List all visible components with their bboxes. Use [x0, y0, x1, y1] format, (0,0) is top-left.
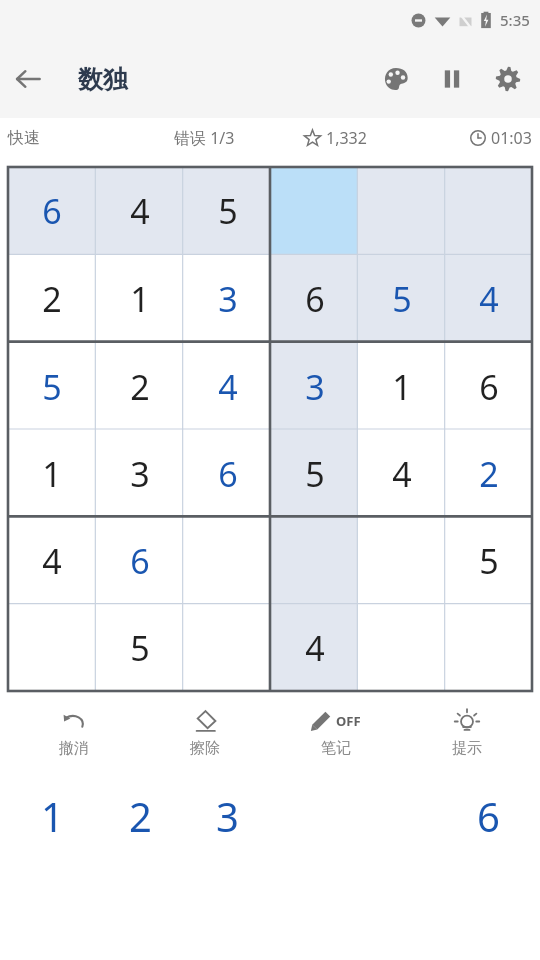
button[interactable]: 2: [96, 780, 184, 852]
staticText: 3: [218, 276, 238, 322]
button[interactable]: [184, 604, 271, 691]
staticText: 5: [479, 538, 499, 584]
button[interactable]: [358, 167, 445, 255]
button[interactable]: Back: [0, 51, 56, 107]
staticText: 2: [42, 276, 62, 322]
button[interactable]: [184, 517, 271, 604]
staticText: 5: [42, 364, 62, 410]
staticText: 擦除: [190, 739, 220, 758]
button[interactable]: 6: [445, 780, 532, 852]
button[interactable]: 3: [96, 430, 184, 517]
button[interactable]: 提示: [401, 703, 532, 762]
button[interactable]: [8, 604, 96, 691]
staticText: 4: [218, 364, 238, 410]
button[interactable]: 6: [8, 167, 96, 255]
staticText: 6: [479, 364, 499, 410]
button[interactable]: 3: [184, 255, 271, 343]
staticText: 6: [305, 276, 325, 322]
button[interactable]: 6: [184, 430, 271, 517]
staticText: 1: [41, 789, 64, 843]
button[interactable]: [271, 167, 358, 255]
staticText: 4: [479, 276, 499, 322]
button[interactable]: 5: [358, 255, 445, 343]
button[interactable]: 2: [8, 255, 96, 343]
button[interactable]: Theme: [368, 51, 424, 107]
button[interactable]: [445, 167, 532, 255]
staticText: 错误 1/3: [174, 127, 235, 149]
staticText: 6: [477, 789, 500, 843]
button[interactable]: 4: [358, 430, 445, 517]
staticText: 01:03: [491, 127, 532, 149]
staticText: 3: [130, 451, 150, 497]
button[interactable]: 4: [271, 604, 358, 691]
button[interactable]: 5: [184, 167, 271, 255]
button[interactable]: 6: [445, 343, 532, 430]
staticText: 3: [305, 364, 325, 410]
button[interactable]: 1: [358, 343, 445, 430]
staticText: 2: [129, 789, 152, 843]
staticText: 快速: [8, 128, 40, 148]
staticText: 6: [130, 538, 150, 584]
staticText: 4: [392, 451, 412, 497]
staticText: 2: [479, 451, 499, 497]
button[interactable]: Settings: [480, 51, 536, 107]
button[interactable]: 撤消: [8, 703, 139, 762]
staticText: 5:35: [500, 10, 530, 30]
staticText: 1: [130, 276, 150, 322]
button[interactable]: 6: [271, 255, 358, 343]
button[interactable]: 5: [8, 343, 96, 430]
staticText: OFF: [336, 712, 361, 730]
staticText: 5: [130, 625, 150, 671]
staticText: 提示: [452, 739, 482, 758]
button[interactable]: [445, 604, 532, 691]
staticText: 2: [130, 364, 150, 410]
staticText: 撤消: [59, 739, 89, 758]
button[interactable]: 4: [96, 167, 184, 255]
staticText: 1: [392, 364, 412, 410]
button[interactable]: [271, 517, 358, 604]
button[interactable]: OFF: [270, 703, 401, 762]
staticText: 数独: [78, 64, 128, 95]
button[interactable]: 5: [271, 430, 358, 517]
button[interactable]: 3: [184, 780, 271, 852]
button[interactable]: 擦除: [139, 703, 270, 762]
staticText: 笔记: [321, 739, 351, 758]
staticText: 6: [42, 188, 62, 234]
staticText: 4: [305, 625, 325, 671]
button[interactable]: [358, 517, 445, 604]
staticText: 5: [218, 188, 238, 234]
button[interactable]: [358, 604, 445, 691]
button[interactable]: 5: [96, 604, 184, 691]
staticText: 5: [305, 451, 325, 497]
button[interactable]: 6: [96, 517, 184, 604]
button[interactable]: 1: [8, 780, 96, 852]
staticText: 6: [218, 451, 238, 497]
button[interactable]: 5: [445, 517, 532, 604]
button[interactable]: 1: [8, 430, 96, 517]
staticText: 3: [216, 789, 239, 843]
staticText: 1,332: [326, 127, 367, 149]
staticText: 1: [42, 451, 62, 497]
button[interactable]: 4: [8, 517, 96, 604]
button[interactable]: 1: [96, 255, 184, 343]
staticText: 5: [392, 276, 412, 322]
button[interactable]: 2: [96, 343, 184, 430]
staticText: 4: [130, 188, 150, 234]
button[interactable]: 4: [184, 343, 271, 430]
button[interactable]: 3: [271, 343, 358, 430]
staticText: 4: [42, 538, 62, 584]
button[interactable]: 4: [445, 255, 532, 343]
button[interactable]: 2: [445, 430, 532, 517]
button[interactable]: Pause: [424, 51, 480, 107]
